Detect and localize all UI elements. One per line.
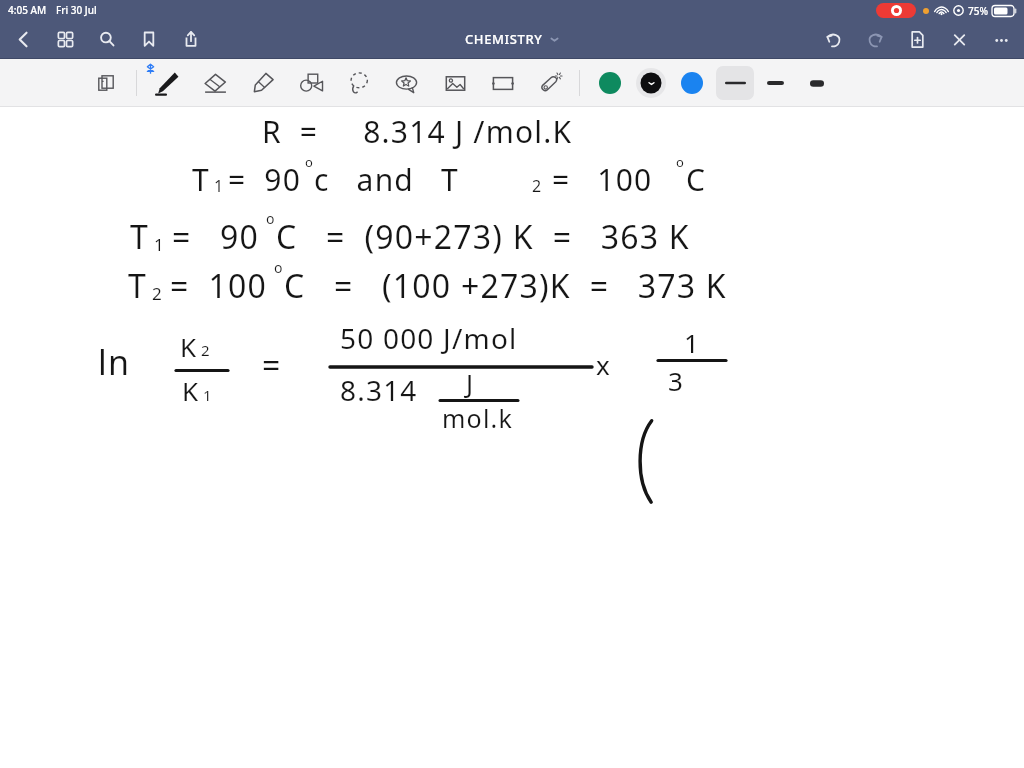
staticText: 2 [152, 282, 163, 305]
staticText: T [130, 215, 149, 259]
button[interactable]: Share [170, 21, 212, 57]
button[interactable]: Pen [143, 61, 191, 105]
staticText: 75% [968, 4, 988, 18]
staticText: o [274, 258, 284, 277]
button[interactable]: Shapes [287, 61, 335, 105]
button[interactable]: Thick stroke [796, 66, 838, 100]
staticText: C = (90+273) K = 363 K [276, 215, 690, 259]
button[interactable]: Search [86, 21, 128, 57]
button[interactable]: Laser pointer [527, 61, 575, 105]
staticText: = 100 [170, 264, 268, 308]
button[interactable]: Add page [896, 21, 938, 57]
staticText: o [676, 153, 686, 171]
staticText: x [596, 347, 611, 382]
button[interactable]: Green colour [590, 63, 630, 103]
button[interactable]: Redo [854, 21, 896, 57]
staticText: 1 [684, 325, 701, 360]
staticText: 2 [201, 340, 211, 360]
button[interactable]: Lasso select [335, 61, 383, 105]
staticText: R = 8.314 J /mol.K [262, 111, 573, 152]
button[interactable]: Undo [812, 21, 854, 57]
staticText: o [266, 209, 276, 228]
button[interactable]: Medium stroke [754, 66, 796, 100]
staticText: C = (100 +273)K = 373 K [284, 264, 727, 308]
staticText: = 100 [552, 159, 653, 200]
button[interactable]: Stickers [383, 61, 431, 105]
button[interactable]: Text box [479, 61, 527, 105]
button[interactable]: Close [938, 21, 980, 57]
staticText: C [686, 159, 707, 200]
button[interactable]: Thin stroke [716, 66, 754, 100]
button[interactable]: Insert image [431, 61, 479, 105]
staticText: 1 [154, 233, 165, 256]
staticText: K [182, 373, 200, 408]
staticText: J [466, 365, 475, 400]
staticText: 2 [532, 175, 543, 197]
staticText: 4:05 AM [8, 3, 47, 17]
button[interactable]: CHEMISTRY [465, 30, 559, 48]
button[interactable]: Back [2, 21, 44, 57]
staticText: c and T [314, 159, 459, 200]
staticText: = [262, 343, 282, 387]
staticText: Fri 30 Jul [56, 3, 97, 17]
staticText: ln [98, 339, 131, 385]
staticText: mol.k [442, 401, 514, 435]
staticText: T [128, 264, 147, 308]
button[interactable]: All notes [44, 21, 86, 57]
staticText: 8.314 [340, 371, 418, 409]
button[interactable]: Eraser [191, 61, 239, 105]
button[interactable]: Pages [82, 61, 130, 105]
staticText: o [305, 153, 315, 171]
button[interactable]: Highlighter [239, 61, 287, 105]
staticText: K [180, 329, 198, 364]
staticText: 1 [203, 385, 213, 405]
staticText: CHEMISTRY [465, 30, 543, 48]
staticText: 50 000 J/mol [340, 319, 518, 357]
staticText: 3 [668, 363, 685, 398]
staticText: 1 [214, 175, 225, 197]
button[interactable]: Bookmark [128, 21, 170, 57]
staticText: = 90 [228, 159, 302, 200]
staticText: = 90 [172, 215, 260, 259]
button[interactable]: More options [980, 21, 1022, 57]
button[interactable]: Black colour, selected [630, 62, 672, 104]
staticText: T [192, 159, 210, 200]
button[interactable]: Blue colour [672, 63, 712, 103]
